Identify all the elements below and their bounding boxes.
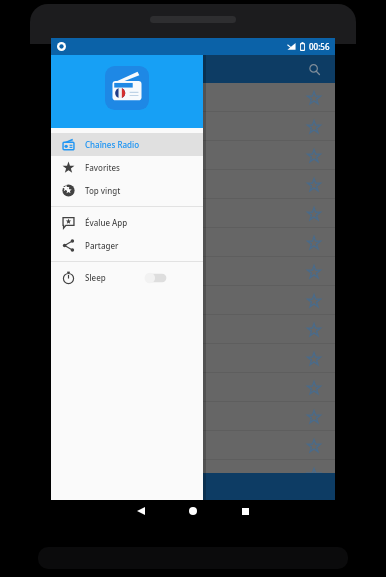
- button[interactable]: Favorite: [302, 289, 326, 313]
- button[interactable]: Partager: [51, 234, 203, 257]
- button[interactable]: Favorite: [302, 463, 326, 487]
- button[interactable]: Favorite: [302, 144, 326, 168]
- staticText: 00:56: [309, 41, 330, 52]
- button[interactable]: Favorite: [302, 405, 326, 429]
- button[interactable]: Favorite: [302, 260, 326, 284]
- button[interactable]: Top vingt: [51, 179, 203, 202]
- button[interactable]: Favorite: [302, 434, 326, 458]
- button[interactable]: [142, 270, 168, 286]
- button[interactable]: Favorites: [51, 156, 203, 179]
- staticText: Favorites: [85, 162, 120, 173]
- button[interactable]: Favorite: [302, 173, 326, 197]
- button[interactable]: Home: [182, 500, 204, 522]
- button[interactable]: Favorite: [302, 115, 326, 139]
- button[interactable]: Search: [303, 58, 325, 80]
- button[interactable]: Favorite: [302, 231, 326, 255]
- staticText: Partager: [85, 240, 119, 251]
- staticText: Chaînes Radio: [85, 139, 140, 150]
- button[interactable]: Recents: [234, 500, 256, 522]
- button[interactable]: Back: [130, 500, 152, 522]
- button[interactable]: Favorite: [302, 202, 326, 226]
- button[interactable]: Évalue App: [51, 211, 203, 234]
- button[interactable]: Favorite: [302, 318, 326, 342]
- staticText: Évalue App: [85, 217, 128, 228]
- button[interactable]: Favorite: [302, 347, 326, 371]
- button[interactable]: Favorite: [302, 86, 326, 110]
- staticText: Sleep: [85, 272, 106, 283]
- button[interactable]: Favorite: [302, 376, 326, 400]
- staticText: Top vingt: [85, 185, 121, 196]
- button[interactable]: Sleep: [51, 266, 203, 289]
- button[interactable]: Chaînes Radio: [51, 133, 203, 156]
